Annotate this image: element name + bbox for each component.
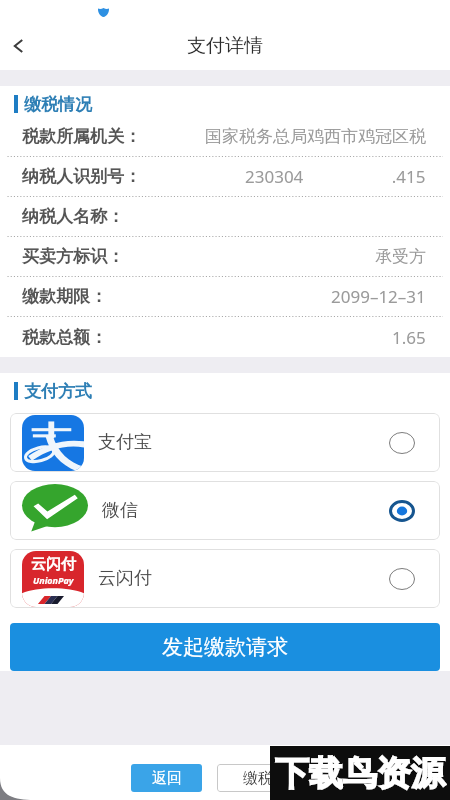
staticText: 1.65 — [392, 326, 426, 349]
staticText: 下载鸟资源 — [275, 752, 445, 795]
staticText: 买卖方标识： — [22, 246, 124, 267]
staticText: 缴款期限： — [22, 286, 107, 307]
staticText: 发起缴款请求 — [162, 634, 288, 660]
staticText: 缴税情况 — [24, 94, 92, 115]
staticText: 国家税务总局鸡西市鸡冠区税 — [205, 126, 426, 147]
staticText: 230304 .415 — [245, 165, 426, 188]
button[interactable]: 支付宝 — [10, 413, 440, 472]
staticText: 支付方式 — [24, 381, 92, 402]
staticText: 支付宝 — [98, 431, 152, 454]
button[interactable]: 微信 — [10, 481, 440, 540]
staticText: 承受方 — [375, 246, 426, 267]
button[interactable]: Back — [0, 24, 36, 68]
staticText: 2099–12–31 — [331, 285, 426, 308]
staticText: 纳税人识别号： — [22, 166, 141, 187]
staticText: 云闪付 — [98, 567, 152, 590]
staticText: 支付详情 — [187, 34, 263, 58]
staticText: 税款总额： — [22, 327, 107, 348]
staticText: 返回 — [152, 769, 182, 788]
button[interactable]: 云闪付 — [10, 549, 440, 608]
staticText: 税款所属机关： — [22, 126, 141, 147]
button[interactable]: 缴税历史 — [217, 764, 329, 792]
button[interactable]: 发起缴款请求 — [10, 623, 440, 671]
staticText: UnionPay — [33, 574, 74, 586]
staticText: 云闪付 — [31, 555, 76, 574]
staticText: 缴税历史 — [243, 769, 303, 788]
button[interactable]: 返回 — [131, 764, 202, 792]
staticText: 微信 — [102, 499, 138, 522]
staticText: 纳税人名称： — [22, 206, 124, 227]
